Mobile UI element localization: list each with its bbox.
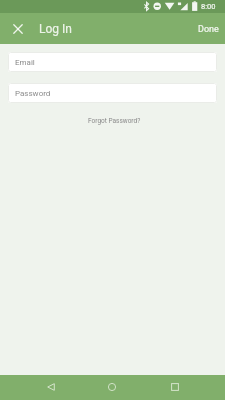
button[interactable]: Recent apps (155, 374, 195, 399)
button[interactable]: Forgot Password? (82, 115, 147, 127)
button[interactable]: Close (6, 13, 29, 44)
staticText: Password (15, 89, 51, 98)
staticText: 8:00 (201, 2, 216, 11)
staticText: Forgot Password? (88, 117, 141, 125)
staticText: Log In (39, 22, 72, 36)
staticText: Email (15, 58, 35, 67)
button[interactable]: Email (8, 52, 217, 72)
button[interactable]: Password (8, 83, 217, 103)
staticText: Done (198, 24, 219, 35)
button[interactable]: Done (192, 18, 225, 41)
button[interactable]: Back (31, 374, 71, 399)
button[interactable]: Home (92, 374, 132, 399)
